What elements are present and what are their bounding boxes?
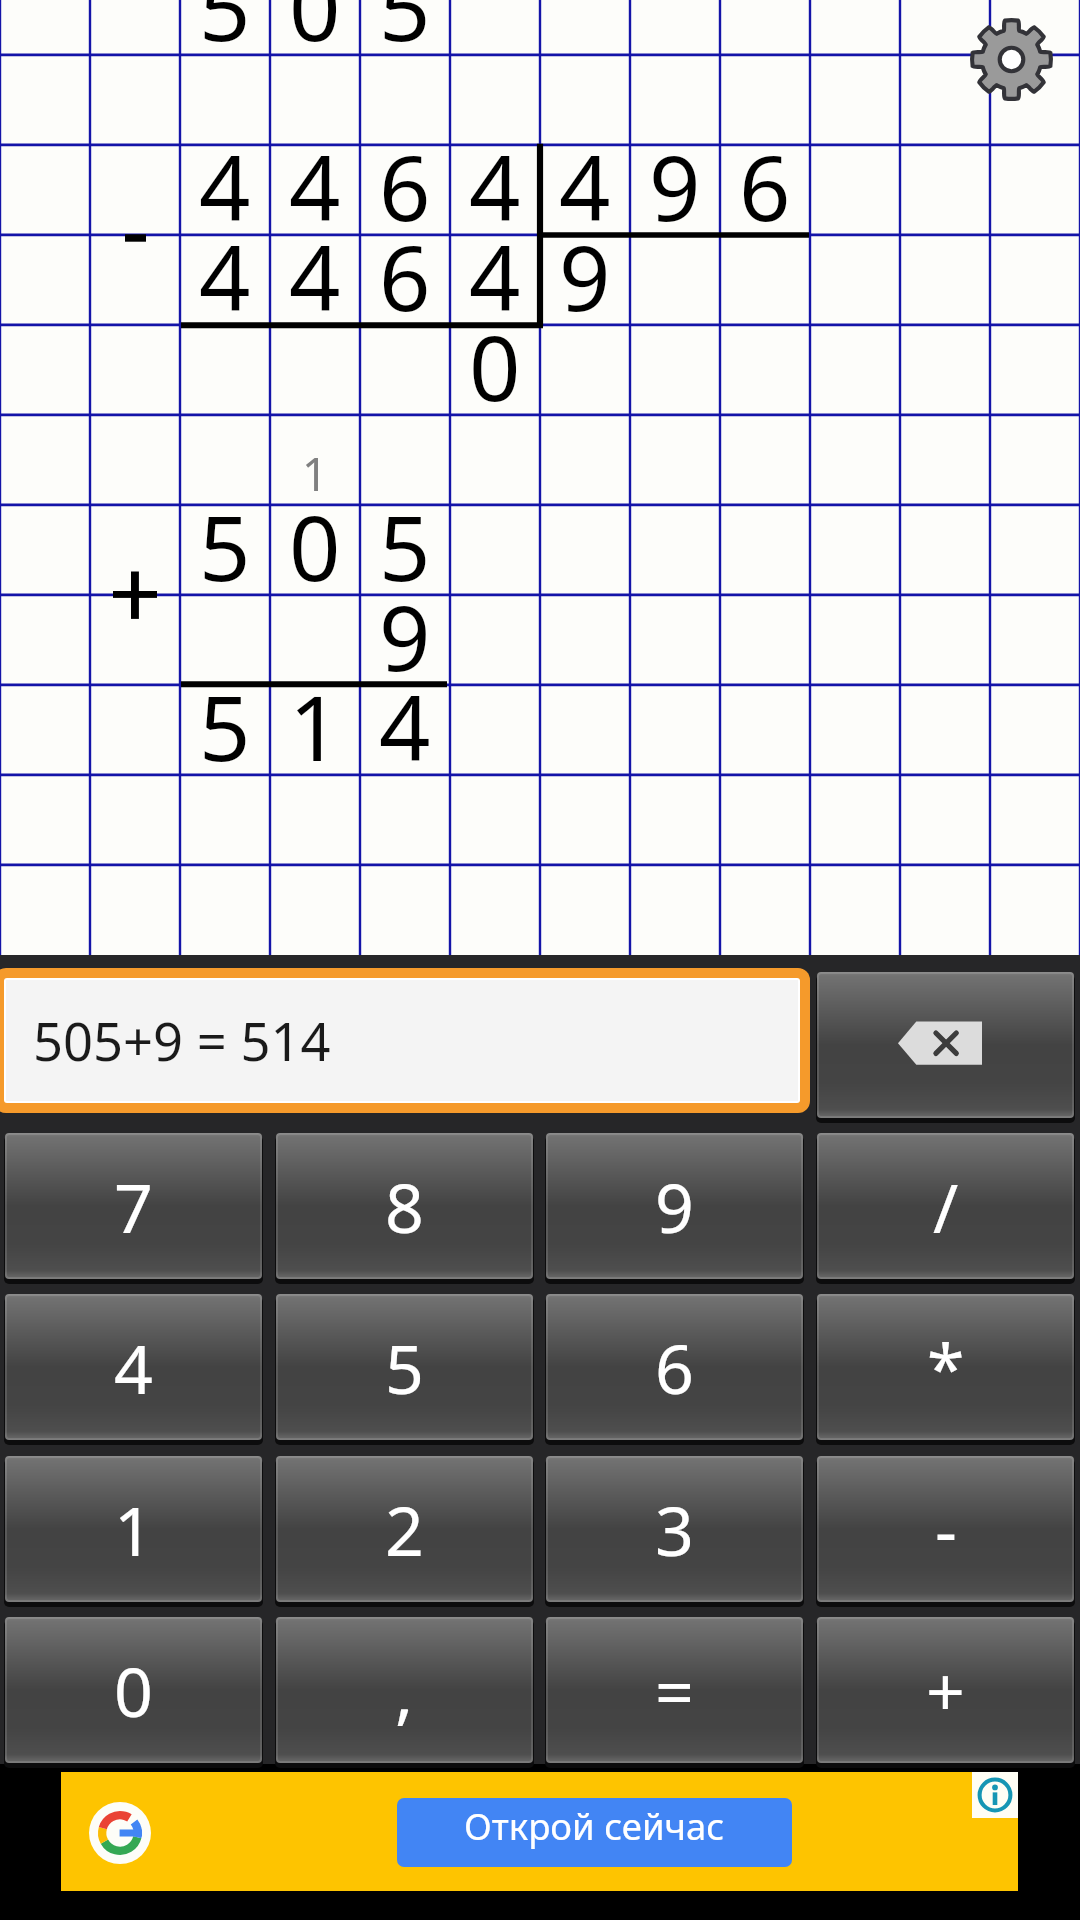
button[interactable]: + (817, 1617, 1074, 1763)
button[interactable]: 8 (276, 1133, 533, 1279)
staticText: 505+9 = 514 (33, 1005, 331, 1077)
staticText: 1 (114, 1483, 153, 1576)
button[interactable]: 5 (276, 1294, 533, 1440)
staticText: 7 (114, 1160, 153, 1253)
staticText: 9 (655, 1160, 694, 1253)
staticText: 5 (385, 1321, 424, 1414)
staticText: + (926, 1644, 965, 1737)
button[interactable]: = (546, 1617, 803, 1763)
button[interactable]: - (817, 1456, 1074, 1602)
button[interactable]: 3 (546, 1456, 803, 1602)
button[interactable]: / (817, 1133, 1074, 1279)
staticText: / (933, 1160, 959, 1253)
staticText: , (395, 1644, 414, 1737)
button[interactable]: Backspace (817, 972, 1074, 1118)
button[interactable]: Открой сейчас (397, 1798, 792, 1867)
button[interactable]: Ad info (972, 1772, 1018, 1818)
staticText: 6 (655, 1321, 694, 1414)
button[interactable]: 9 (546, 1133, 803, 1279)
button[interactable]: 4 (5, 1294, 262, 1440)
button[interactable]: 6 (546, 1294, 803, 1440)
button[interactable]: 0 (5, 1617, 262, 1763)
staticText: 2 (385, 1483, 424, 1576)
button[interactable]: Settings (970, 18, 1053, 101)
staticText: 3 (655, 1483, 694, 1576)
button[interactable]: * (817, 1294, 1074, 1440)
button[interactable]: Открой сейчас (61, 1772, 1018, 1891)
staticText: - (935, 1483, 957, 1576)
staticText: 0 (114, 1644, 153, 1737)
staticText: 4 (114, 1321, 153, 1414)
button[interactable]: , (276, 1617, 533, 1763)
button[interactable]: 7 (5, 1133, 262, 1279)
button[interactable]: 2 (276, 1456, 533, 1602)
staticText: = (655, 1644, 694, 1737)
staticText: Открой сейчас (464, 1801, 725, 1851)
staticText: 8 (385, 1160, 424, 1253)
button[interactable]: 1 (5, 1456, 262, 1602)
button[interactable]: 505+9 = 514 (6, 980, 798, 1101)
staticText: * (927, 1321, 965, 1414)
